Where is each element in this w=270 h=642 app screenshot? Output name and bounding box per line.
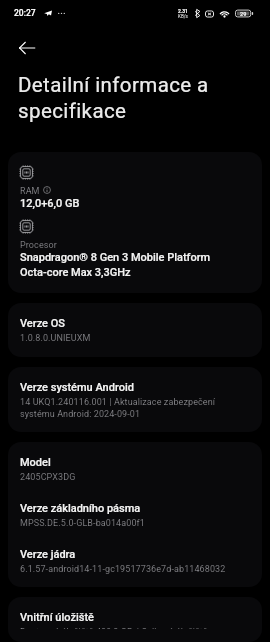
staticText: Verze systému Android — [20, 380, 134, 395]
button[interactable]: Vnitřní úložiště — [8, 597, 262, 642]
staticText: 2405CPX3DG — [20, 470, 76, 482]
staticText: Detailní informace a specifikace — [18, 71, 209, 123]
staticText: Vnitřní úložiště — [20, 610, 94, 625]
staticText: Verze OS — [20, 316, 65, 331]
staticText: 1.0.8.0.UNIEUXM — [20, 331, 91, 343]
staticText: KB/s — [178, 14, 188, 19]
staticText: MPSS.DE.5.0-GLB-ba014a00f1 — [20, 516, 145, 528]
staticText: Verze základního pásma — [20, 501, 141, 516]
staticText: Verze jádra — [20, 547, 76, 562]
button[interactable]: Verze systému Android — [8, 367, 262, 432]
staticText: 2.31 — [178, 8, 188, 14]
button[interactable]: RAM — [8, 152, 262, 293]
button[interactable]: Back — [15, 36, 39, 60]
staticText: Snapdragon® 8 Gen 3 Mobile Platform Octa… — [20, 250, 211, 280]
staticText: 20:27 — [14, 8, 36, 18]
staticText: RAM — [20, 184, 40, 196]
staticText: Model — [20, 455, 51, 470]
staticText: 12,0+6,0 GB — [20, 196, 80, 211]
staticText: 14 UKQ1.240116.001 | Aktualizace zabezpe… — [20, 395, 216, 419]
staticText: Procesor — [20, 238, 57, 250]
button[interactable]: Model — [8, 442, 262, 587]
staticText: 6.1.57-android14-11-gc19517736e7d-ab1146… — [20, 562, 226, 574]
staticText: Dostupné úložiště 489,2 GB / Celkové úlo… — [20, 625, 208, 629]
staticText: 29 — [240, 11, 247, 17]
button[interactable]: Verze OS — [8, 303, 262, 357]
